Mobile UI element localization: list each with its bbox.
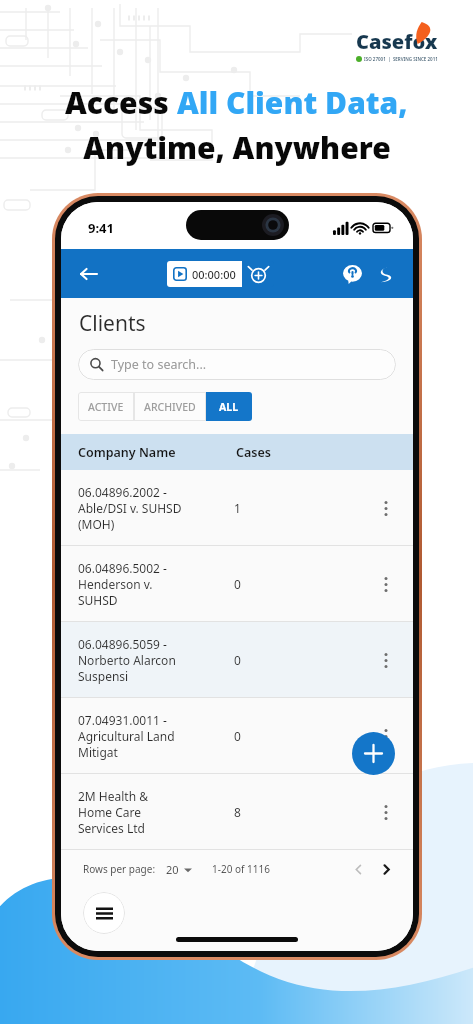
staticText: ISO 27001 | SERVING SINCE 2011 <box>364 56 438 62</box>
button[interactable]: 06.04896.5002 - <box>61 546 413 622</box>
button[interactable]: Menu <box>83 892 125 934</box>
staticText: ALL <box>219 400 239 414</box>
button[interactable]: Previous page <box>347 858 369 880</box>
staticText: Casefox <box>356 28 438 55</box>
staticText: Company Name <box>78 444 188 461</box>
staticText: 07.04931.0011 - <box>78 712 167 728</box>
staticText: 06.04896.2002 - <box>78 484 167 500</box>
button[interactable]: 06.04896.2002 - <box>61 470 413 546</box>
staticText: Services Ltd <box>78 820 145 836</box>
button[interactable]: 07.04931.0011 - <box>61 698 413 774</box>
staticText: 0 <box>234 576 241 592</box>
button[interactable]: Back <box>71 257 105 291</box>
staticText: Rows per page: <box>83 862 156 876</box>
staticText: ACTIVE <box>88 400 124 414</box>
staticText: SUHSD <box>78 592 118 608</box>
button[interactable]: More options <box>373 799 399 825</box>
staticText: Clients <box>79 309 146 338</box>
staticText: 0 <box>234 652 241 668</box>
staticText: 2M Health & <box>78 788 149 804</box>
staticText: Able/DSI v. SUHSD <box>78 500 182 516</box>
staticText: Agricultural Land <box>78 728 175 744</box>
staticText: Norberto Alarcon <box>78 652 176 668</box>
button[interactable]: More options <box>373 571 399 597</box>
staticText: All Client Data, <box>177 82 408 123</box>
button[interactable]: More options <box>373 647 399 673</box>
button[interactable]: ALL <box>206 392 252 421</box>
staticText: Cases <box>236 444 271 461</box>
button[interactable]: More options <box>373 723 399 749</box>
staticText: Henderson v. <box>78 576 153 592</box>
staticText: 0 <box>234 728 241 744</box>
staticText: Access <box>65 82 177 123</box>
button[interactable]: ACTIVE <box>78 392 134 421</box>
staticText: 06.04896.5002 - <box>78 560 167 576</box>
button[interactable]: 20 <box>166 862 192 877</box>
other: Start timer <box>242 261 274 287</box>
button[interactable]: Help <box>337 259 367 289</box>
staticText: 9:41 <box>88 219 114 237</box>
button[interactable]: 2M Health & <box>61 774 413 850</box>
staticText: Suspensi <box>78 668 129 684</box>
button[interactable]: Profile <box>371 259 401 289</box>
staticText: Anytime, Anywhere <box>83 127 391 168</box>
button[interactable]: Next page <box>375 858 397 880</box>
staticText: 00:00:00 <box>192 267 236 282</box>
staticText: 06.04896.5059 - <box>78 636 167 652</box>
button[interactable]: 06.04896.5059 - <box>61 622 413 698</box>
staticText: Home Care <box>78 804 142 820</box>
staticText: 8 <box>234 804 241 820</box>
staticText: Type to search... <box>111 356 207 373</box>
button[interactable]: 00:00:00 <box>167 261 274 287</box>
staticText: 1-20 of 1116 <box>212 862 270 876</box>
staticText: 20 <box>166 862 179 877</box>
staticText: Mitigat <box>78 744 118 760</box>
button[interactable]: Add client <box>352 732 395 775</box>
button[interactable]: ARCHIVED <box>134 392 206 421</box>
staticText: (MOH) <box>78 516 115 532</box>
button[interactable]: Type to search... <box>78 349 396 380</box>
staticText: ARCHIVED <box>144 400 196 414</box>
button[interactable]: More options <box>373 495 399 521</box>
staticText: 1 <box>234 500 241 516</box>
